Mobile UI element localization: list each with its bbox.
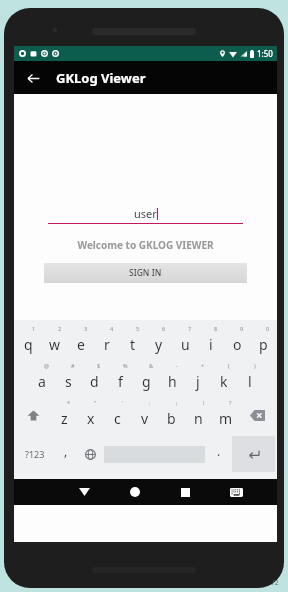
staticText: 9 — [240, 325, 244, 332]
staticText: + — [201, 362, 205, 369]
button[interactable]: + — [185, 360, 211, 397]
button[interactable]: 4 — [94, 323, 120, 360]
staticText: - — [176, 362, 178, 369]
button[interactable]: user — [48, 206, 243, 224]
button[interactable]: Change language — [78, 434, 102, 474]
button[interactable]: 5 — [120, 323, 146, 360]
button[interactable]: 6 — [146, 323, 172, 360]
button[interactable]: 3 — [68, 323, 94, 360]
staticText: s — [65, 372, 72, 391]
staticText: l — [248, 372, 252, 391]
button[interactable]: Backspace — [239, 397, 276, 434]
staticText: 7 — [188, 325, 192, 332]
staticText: b — [167, 409, 176, 428]
staticText: v — [141, 409, 149, 428]
button[interactable]: 2 — [42, 323, 68, 360]
staticText: 1:50 — [257, 48, 273, 59]
staticText: ( — [228, 362, 230, 369]
staticText: n — [194, 409, 203, 428]
staticText: ) — [254, 362, 256, 369]
button[interactable]: Back — [59, 479, 109, 505]
button[interactable]: ?123 — [15, 434, 54, 474]
button[interactable]: : — [131, 397, 158, 434]
staticText: ; — [176, 399, 178, 406]
staticText: * — [67, 399, 71, 406]
staticText: 3 — [84, 325, 88, 332]
button[interactable]: 0 — [250, 323, 276, 360]
button[interactable]: Back — [21, 66, 45, 90]
staticText: user — [134, 206, 157, 221]
staticText: @ — [44, 362, 49, 369]
staticText: 1 — [32, 325, 36, 332]
staticText: 2 — [58, 325, 62, 332]
staticText: ! — [203, 399, 205, 406]
staticText: m — [219, 409, 233, 428]
staticText: a — [38, 372, 46, 391]
staticText: . — [217, 443, 221, 459]
button[interactable]: ? — [212, 397, 239, 434]
staticText: Welcome to GKLOG VIEWER — [77, 238, 214, 252]
button[interactable]: ; — [158, 397, 185, 434]
button[interactable]: ( — [211, 360, 237, 397]
staticText: k — [220, 372, 228, 391]
button[interactable]: 7 — [172, 323, 198, 360]
staticText: 6 — [162, 325, 166, 332]
staticText: ? — [229, 399, 232, 406]
button[interactable]: Shift — [15, 397, 51, 434]
button[interactable]: Recents — [160, 479, 211, 505]
button[interactable]: , — [54, 434, 78, 474]
staticText: " — [94, 399, 97, 406]
button[interactable]: . — [207, 434, 231, 474]
staticText: c — [114, 409, 121, 428]
staticText: 8 — [214, 325, 218, 332]
staticText: x — [87, 409, 95, 428]
staticText: 5 — [136, 325, 140, 332]
staticText: ?123 — [25, 448, 45, 460]
staticText: i — [209, 335, 213, 354]
staticText: 0 — [266, 325, 270, 332]
staticText: u — [181, 335, 190, 354]
button[interactable]: - — [159, 360, 185, 397]
staticText: j — [196, 372, 200, 391]
button[interactable]: $ — [81, 360, 107, 397]
staticText: # — [71, 362, 75, 369]
button[interactable]: % — [107, 360, 133, 397]
staticText: g — [142, 372, 151, 391]
staticText: % — [123, 362, 128, 369]
button[interactable]: ' — [104, 397, 131, 434]
button[interactable]: 8 — [198, 323, 224, 360]
button[interactable]: 1 — [15, 323, 42, 360]
button[interactable]: & — [133, 360, 159, 397]
staticText: y — [155, 335, 163, 354]
staticText: , — [64, 443, 68, 459]
staticText: e — [77, 335, 85, 354]
staticText: d — [90, 372, 99, 391]
button[interactable]: # — [55, 360, 81, 397]
staticText: h — [168, 372, 177, 391]
button[interactable]: ! — [185, 397, 212, 434]
staticText: r — [104, 335, 110, 354]
staticText: SIGN IN — [129, 267, 162, 279]
staticText: z — [61, 409, 68, 428]
button[interactable]: Enter — [232, 436, 275, 472]
staticText: /2 — [272, 578, 279, 588]
staticText: 4 — [110, 325, 114, 332]
button[interactable]: Switch keyboard — [211, 479, 262, 505]
staticText: w — [49, 335, 61, 354]
staticText: q — [24, 335, 33, 354]
staticText: p — [259, 335, 268, 354]
staticText: GKLog Viewer — [56, 69, 146, 87]
button[interactable]: Home — [109, 479, 160, 505]
staticText: : — [149, 399, 151, 406]
button[interactable]: 9 — [224, 323, 250, 360]
staticText: & — [149, 362, 154, 369]
staticText: f — [118, 372, 123, 391]
button[interactable]: @ — [28, 360, 55, 397]
staticText: $ — [97, 362, 101, 369]
button[interactable]: " — [77, 397, 104, 434]
button[interactable]: ) — [237, 360, 263, 397]
button[interactable]: * — [51, 397, 77, 434]
staticText: t — [130, 335, 136, 354]
button[interactable]: SIGN IN — [44, 263, 247, 283]
